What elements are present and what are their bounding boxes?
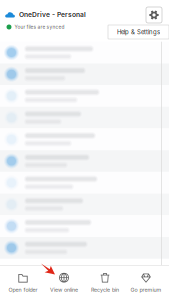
button[interactable] [0,107,169,128]
staticText: Help & Settings [117,28,160,36]
button[interactable] [0,215,169,237]
button[interactable] [0,237,169,259]
button[interactable] [0,194,169,215]
button[interactable]: Help and Settings [146,7,162,23]
staticText: Recycle bin [91,286,119,293]
button[interactable] [0,128,169,150]
staticText: Go premium [130,286,161,293]
staticText: View online [50,286,78,293]
button[interactable] [0,85,169,107]
button[interactable]: Open folder [3,266,43,300]
staticText: Your files are synced [14,24,64,30]
button[interactable] [0,63,169,85]
button[interactable] [0,150,169,172]
button[interactable]: Go premium [126,266,166,300]
button[interactable] [0,172,169,194]
button[interactable]: View online [44,266,84,300]
staticText: OneDrive - Personal [19,10,86,19]
button[interactable] [0,42,169,63]
button[interactable]: Recycle bin [85,266,125,300]
staticText: Open folder [8,286,37,293]
